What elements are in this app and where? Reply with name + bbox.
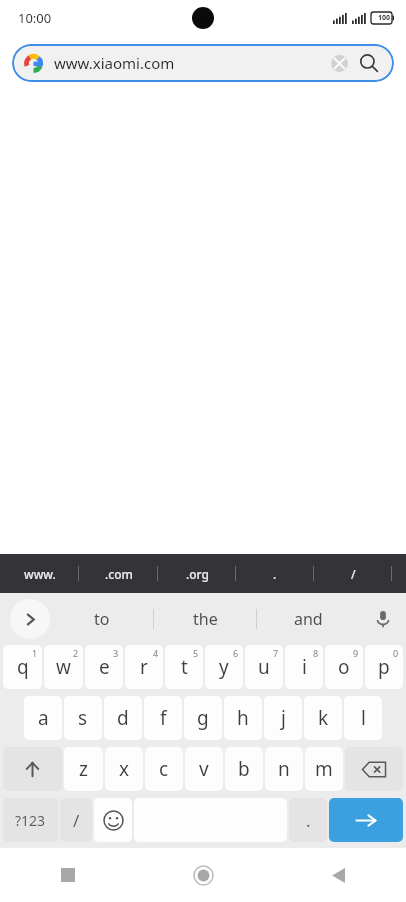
- button[interactable]: w: [44, 645, 83, 689]
- button[interactable]: s: [64, 696, 102, 740]
- staticText: 1: [32, 647, 38, 659]
- staticText: k: [318, 705, 329, 731]
- button[interactable]: h: [224, 696, 262, 740]
- staticText: 8: [313, 647, 319, 659]
- button[interactable]: .: [289, 798, 327, 842]
- button[interactable]: u: [245, 645, 283, 689]
- button[interactable]: v: [185, 747, 223, 791]
- button[interactable]: r: [125, 645, 163, 689]
- staticText: d: [117, 705, 129, 731]
- button[interactable]: /: [60, 798, 92, 842]
- staticText: w: [56, 654, 71, 680]
- button[interactable]: Emoji: [94, 798, 132, 842]
- staticText: v: [199, 756, 209, 782]
- staticText: s: [78, 705, 88, 731]
- staticText: ?123: [15, 811, 46, 830]
- staticText: 9: [353, 647, 359, 659]
- staticText: i: [302, 654, 307, 680]
- staticText: p: [378, 654, 390, 680]
- staticText: y: [219, 654, 229, 680]
- staticText: and: [294, 608, 323, 630]
- staticText: n: [278, 756, 290, 782]
- button[interactable]: m: [305, 747, 343, 791]
- staticText: .com: [105, 566, 133, 582]
- staticText: www.xiaomi.com: [54, 53, 175, 73]
- staticText: /: [73, 809, 80, 832]
- button[interactable]: Shift: [3, 747, 62, 791]
- staticText: 0: [393, 647, 399, 659]
- button[interactable]: Back: [271, 848, 406, 902]
- button[interactable]: j: [264, 696, 302, 740]
- staticText: .org: [186, 566, 209, 582]
- button[interactable]: i: [285, 645, 323, 689]
- button[interactable]: c: [145, 747, 183, 791]
- staticText: 6: [233, 647, 239, 659]
- button[interactable]: e: [85, 645, 123, 689]
- button[interactable]: n: [265, 747, 303, 791]
- staticText: r: [140, 654, 148, 680]
- button[interactable]: to: [50, 593, 154, 645]
- button[interactable]: Home: [136, 848, 271, 902]
- button[interactable]: .org: [158, 554, 236, 593]
- button[interactable]: ?123: [3, 798, 58, 842]
- staticText: 100: [378, 13, 391, 23]
- button[interactable]: q: [3, 645, 42, 689]
- button[interactable]: Expand suggestions: [10, 599, 50, 639]
- staticText: 4: [153, 647, 159, 659]
- button[interactable]: Clear: [328, 52, 350, 74]
- button[interactable]: y: [205, 645, 243, 689]
- button[interactable]: Search: [356, 50, 382, 76]
- button[interactable]: g: [184, 696, 222, 740]
- staticText: 2: [73, 647, 79, 659]
- staticText: 3: [113, 647, 119, 659]
- button[interactable]: Backspace: [345, 747, 403, 791]
- button[interactable]: .com: [79, 554, 158, 593]
- button[interactable]: Recent apps: [0, 848, 136, 902]
- staticText: .: [306, 809, 311, 832]
- staticText: g: [197, 705, 209, 731]
- staticText: m: [315, 756, 333, 782]
- button[interactable]: l: [344, 696, 382, 740]
- button[interactable]: the: [154, 593, 257, 645]
- staticText: q: [17, 654, 29, 680]
- staticText: f: [160, 705, 167, 731]
- button[interactable]: and: [257, 593, 360, 645]
- staticText: z: [79, 756, 88, 782]
- staticText: l: [361, 705, 366, 731]
- staticText: to: [94, 608, 110, 630]
- button[interactable]: p: [365, 645, 403, 689]
- staticText: www.: [24, 566, 56, 582]
- button[interactable]: x: [105, 747, 143, 791]
- staticText: x: [119, 756, 130, 782]
- staticText: b: [238, 756, 250, 782]
- staticText: h: [237, 705, 249, 731]
- button[interactable]: k: [304, 696, 342, 740]
- staticText: u: [258, 654, 270, 680]
- staticText: o: [338, 654, 350, 680]
- button[interactable]: .: [236, 554, 314, 593]
- button[interactable]: o: [325, 645, 363, 689]
- staticText: 5: [193, 647, 199, 659]
- staticText: a: [38, 705, 49, 731]
- button[interactable]: www.: [0, 554, 79, 593]
- button[interactable]: t: [165, 645, 203, 689]
- staticText: 7: [273, 647, 279, 659]
- staticText: .: [273, 566, 277, 582]
- button[interactable]: Voice input: [360, 593, 406, 645]
- staticText: 10:00: [18, 9, 52, 27]
- button[interactable]: d: [104, 696, 142, 740]
- button[interactable]: /: [314, 554, 392, 593]
- staticText: e: [99, 654, 110, 680]
- staticText: c: [159, 756, 169, 782]
- button[interactable]: Go: [329, 798, 403, 842]
- staticText: the: [193, 608, 218, 630]
- staticText: /: [351, 566, 356, 582]
- staticText: t: [181, 654, 188, 680]
- staticText: j: [281, 705, 286, 731]
- button[interactable]: a: [24, 696, 62, 740]
- button[interactable]: f: [144, 696, 182, 740]
- button[interactable]: www.xiaomi.com: [12, 44, 394, 82]
- button[interactable]: z: [64, 747, 103, 791]
- button[interactable]: b: [225, 747, 263, 791]
